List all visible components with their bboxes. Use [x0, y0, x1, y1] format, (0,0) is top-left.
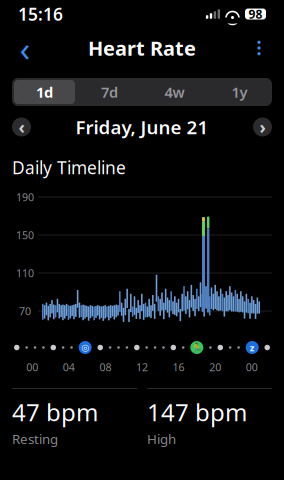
staticText: High — [147, 430, 176, 448]
staticText: 150 — [16, 228, 34, 242]
staticText: ‹ — [19, 25, 30, 71]
staticText: 00 — [246, 360, 258, 374]
staticText: 4w — [164, 82, 184, 102]
staticText: 04 — [63, 360, 75, 374]
staticText: Resting — [12, 430, 58, 448]
staticText: 7d — [101, 82, 118, 102]
staticText: › — [259, 115, 265, 138]
staticText: 110 — [16, 266, 34, 280]
staticText: 1y — [231, 82, 247, 102]
button[interactable]: Back — [8, 31, 42, 65]
button[interactable]: 7d — [77, 78, 142, 106]
staticText: 47 bpm — [12, 396, 98, 428]
staticText: 70 — [19, 304, 31, 318]
button[interactable]: 4w — [142, 78, 207, 106]
staticText: 147 bpm — [147, 396, 247, 428]
button[interactable]: Previous day — [12, 117, 31, 136]
staticText: 12 — [136, 360, 148, 374]
staticText: Friday, June 21 — [75, 115, 208, 139]
button[interactable]: Next day — [253, 117, 272, 136]
button[interactable]: 1d — [12, 78, 77, 106]
staticText: 20 — [209, 360, 221, 374]
button[interactable]: 1y — [207, 78, 272, 106]
staticText: Daily Timeline — [12, 156, 126, 179]
staticText: 08 — [99, 360, 111, 374]
staticText: 🏃 — [191, 342, 203, 353]
staticText: 16 — [173, 360, 185, 374]
staticText: Heart Rate — [88, 35, 196, 61]
button[interactable]: More options — [242, 31, 276, 65]
staticText: 00 — [26, 360, 38, 374]
staticText: ‹ — [18, 115, 24, 138]
staticText: 15:16 — [18, 2, 63, 25]
staticText: z — [250, 341, 255, 354]
staticText: 1d — [36, 82, 53, 102]
staticText: 98 — [248, 6, 262, 22]
staticText: 190 — [16, 190, 34, 204]
staticText: ◎ — [81, 342, 89, 353]
